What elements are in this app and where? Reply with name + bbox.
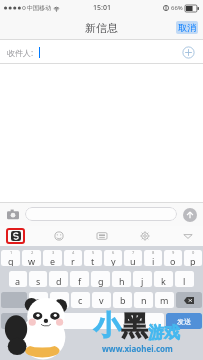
button[interactable]: ,: [32, 313, 56, 329]
staticText: c: [78, 294, 83, 306]
button[interactable]: d: [49, 271, 68, 287]
staticText: g: [98, 275, 104, 287]
staticText: 中国移动: [27, 4, 51, 12]
staticText: a: [15, 275, 21, 287]
staticText: 游戏: [148, 323, 180, 343]
staticText: ,: [43, 316, 46, 327]
staticText: u: [130, 255, 136, 266]
button[interactable]: 4: [64, 250, 82, 266]
staticText: 新信息: [85, 21, 118, 35]
button[interactable]: f: [70, 271, 89, 287]
button[interactable]: Stickers: [93, 227, 111, 245]
button[interactable]: 6: [104, 250, 122, 266]
staticText: 小: [94, 309, 121, 343]
staticText: 5: [92, 250, 95, 255]
button[interactable]: 1: [1, 250, 20, 266]
staticText: k: [161, 275, 166, 287]
staticText: .: [151, 316, 154, 327]
staticText: 2: [31, 250, 34, 255]
button[interactable]: 8: [144, 250, 162, 266]
button[interactable]: Emoji: [50, 227, 68, 245]
staticText: r: [71, 255, 75, 266]
staticText: b: [120, 294, 126, 306]
staticText: 123: [9, 316, 22, 326]
staticText: w: [28, 255, 36, 266]
button[interactable]: Backspace: [176, 292, 202, 308]
button[interactable]: 7: [124, 250, 142, 266]
button[interactable]: 发送: [166, 313, 202, 329]
button[interactable]: c: [71, 292, 90, 308]
button[interactable]: Shift: [1, 292, 27, 308]
staticText: h: [119, 275, 125, 287]
staticText: 0: [192, 250, 195, 255]
staticText: 1: [10, 250, 13, 255]
button[interactable]: x: [50, 292, 69, 308]
staticText: o: [170, 255, 176, 266]
button[interactable]: s: [29, 271, 47, 287]
button[interactable]: 123: [1, 313, 30, 329]
staticText: 发送: [177, 317, 191, 326]
staticText: 4: [72, 250, 75, 255]
staticText: t: [91, 255, 95, 266]
button[interactable]: 取消: [176, 21, 198, 34]
button[interactable]: j: [133, 271, 152, 287]
staticText: z: [36, 294, 41, 306]
button[interactable]: n: [134, 292, 153, 308]
button[interactable]: 3: [43, 250, 62, 266]
staticText: j: [141, 275, 144, 287]
staticText: www.xiaohei.com: [102, 343, 173, 354]
staticText: x: [57, 294, 62, 306]
staticText: 黑: [121, 309, 148, 343]
staticText: s: [36, 275, 41, 287]
button[interactable]: Hide keyboard: [179, 227, 197, 245]
staticText: i: [152, 255, 155, 266]
staticText: d: [56, 275, 62, 287]
button[interactable]: 9: [164, 250, 182, 266]
staticText: y: [111, 255, 116, 266]
staticText: q: [8, 255, 14, 266]
button[interactable]: [25, 207, 177, 221]
staticText: 3: [52, 250, 55, 255]
button[interactable]: Space: [58, 313, 138, 329]
button[interactable]: 2: [22, 250, 41, 266]
button[interactable]: m: [155, 292, 174, 308]
staticText: 9: [172, 250, 175, 255]
button[interactable]: g: [91, 271, 110, 287]
button[interactable]: b: [113, 292, 132, 308]
staticText: f: [78, 275, 82, 287]
staticText: 收件人:: [7, 47, 34, 58]
staticText: 取消: [178, 22, 196, 33]
staticText: 15:01: [93, 3, 111, 13]
staticText: e: [50, 255, 56, 266]
button[interactable]: z: [29, 292, 48, 308]
button[interactable]: 0: [184, 250, 202, 266]
button[interactable]: l: [175, 271, 194, 287]
button[interactable]: a: [9, 271, 27, 287]
button[interactable]: h: [112, 271, 131, 287]
staticText: 7: [132, 250, 135, 255]
button[interactable]: 5: [84, 250, 102, 266]
button[interactable]: Settings: [136, 227, 154, 245]
staticText: 66%: [171, 4, 183, 12]
staticText: p: [190, 255, 196, 266]
staticText: 6: [112, 250, 115, 255]
button[interactable]: Sogou input method: [6, 228, 25, 244]
staticText: n: [141, 294, 147, 306]
button[interactable]: Send: [181, 206, 198, 223]
staticText: v: [99, 294, 104, 306]
staticText: 8: [152, 250, 155, 255]
staticText: l: [183, 275, 186, 287]
button[interactable]: .: [140, 313, 164, 329]
button[interactable]: k: [154, 271, 173, 287]
staticText: m: [160, 294, 169, 306]
button[interactable]: Camera: [5, 206, 21, 222]
button[interactable]: Add contact: [180, 44, 196, 60]
button[interactable]: v: [92, 292, 111, 308]
